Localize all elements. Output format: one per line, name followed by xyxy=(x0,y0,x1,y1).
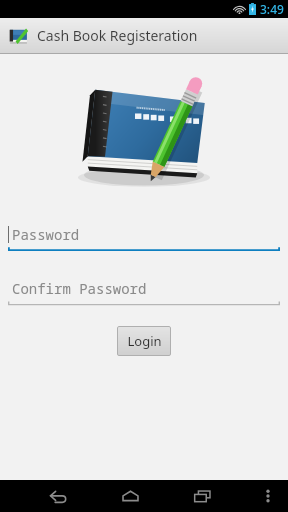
button[interactable]: Password xyxy=(8,220,280,252)
button[interactable]: Back xyxy=(40,482,76,510)
button[interactable]: More options xyxy=(254,482,282,510)
button[interactable]: Recent apps xyxy=(184,482,220,510)
staticText: 3:49 xyxy=(260,1,284,17)
button[interactable]: Home xyxy=(112,482,148,510)
button[interactable]: App icon xyxy=(6,24,30,48)
button[interactable]: Confirm Password xyxy=(8,274,280,306)
staticText: Cash Book Registeration xyxy=(37,26,198,45)
staticText: Password xyxy=(12,225,80,244)
staticText: Login xyxy=(127,332,162,350)
button[interactable]: Login xyxy=(117,326,171,356)
staticText: Confirm Password xyxy=(12,279,147,298)
